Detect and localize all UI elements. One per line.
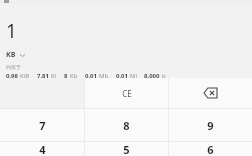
staticText: Ki [51, 72, 57, 78]
staticText: 6 [207, 142, 214, 156]
staticText: 约等于 [6, 64, 21, 70]
staticText: KB [6, 50, 16, 60]
button[interactable]: 6 [169, 142, 252, 156]
button[interactable]: KB [6, 50, 26, 60]
staticText: 0.01 [85, 72, 97, 78]
staticText: b [162, 72, 166, 78]
staticText: 7.81 [37, 72, 49, 78]
button[interactable]: 9 [169, 109, 252, 141]
button[interactable]: 5 [85, 142, 168, 156]
staticText: Mb [99, 72, 109, 78]
staticText: 8 [123, 118, 130, 133]
staticText: 5 [123, 142, 130, 156]
staticText: Mi [130, 72, 137, 78]
button[interactable]: 8 [85, 109, 168, 141]
staticText: 4 [39, 142, 46, 156]
staticText: 0.98 [6, 72, 18, 78]
button[interactable]: Backspace [169, 78, 252, 108]
staticText: CE [122, 88, 132, 99]
staticText: 7 [39, 118, 46, 133]
staticText: 0.01 [116, 72, 128, 78]
button[interactable]: 4 [0, 142, 84, 156]
staticText: 8 [64, 72, 68, 78]
staticText: 1 [6, 18, 17, 44]
staticText: 8,000 [144, 72, 160, 78]
staticText: KiB [20, 72, 30, 78]
staticText: Kb [70, 72, 78, 78]
button[interactable]: CE [85, 78, 168, 108]
button[interactable]: 7 [0, 109, 84, 141]
staticText: 9 [207, 118, 214, 133]
